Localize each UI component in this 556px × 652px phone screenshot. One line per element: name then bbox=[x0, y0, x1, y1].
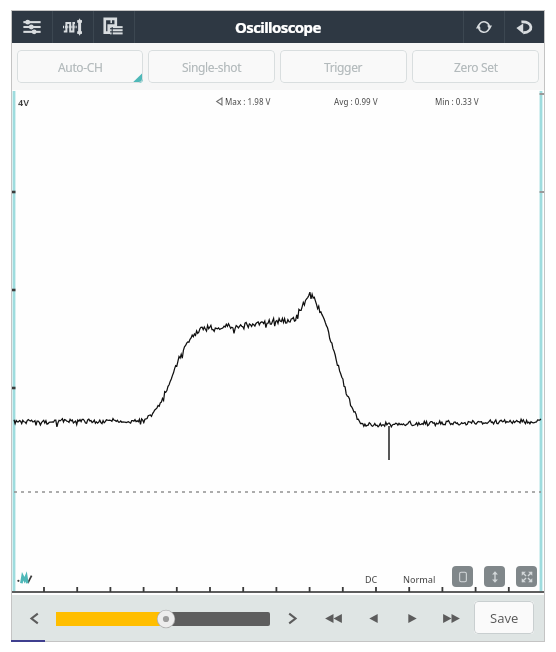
staticText: Trigger bbox=[324, 59, 363, 75]
button[interactable]: Save bbox=[474, 601, 534, 634]
button[interactable]: Rewind bbox=[319, 595, 347, 642]
staticText: Min : 0.33 V bbox=[435, 96, 479, 107]
button[interactable]: Settings bbox=[11, 10, 52, 43]
button[interactable]: Refresh bbox=[463, 10, 504, 43]
button[interactable]: Zero Set bbox=[412, 50, 539, 83]
staticText: 4V bbox=[18, 96, 29, 108]
staticText: Save bbox=[490, 609, 519, 627]
staticText: Single-shot bbox=[182, 59, 242, 75]
staticText: Max : 1.98 V bbox=[225, 96, 271, 107]
button[interactable]: Vertical scale bbox=[484, 566, 505, 587]
button[interactable]: Step forward bbox=[398, 595, 426, 642]
button[interactable]: Trigger bbox=[280, 50, 407, 83]
staticText: DC bbox=[365, 573, 403, 585]
button[interactable]: Single-shot bbox=[148, 50, 275, 83]
staticText: Normal bbox=[403, 573, 436, 585]
staticText: Avg : 0.99 V bbox=[334, 96, 378, 107]
button[interactable]: Hold bbox=[452, 566, 473, 587]
button[interactable]: Waveform bbox=[52, 10, 93, 43]
button[interactable]: Auto-CH bbox=[17, 50, 143, 83]
staticText: Zero Set bbox=[454, 59, 498, 75]
button[interactable] bbox=[56, 595, 270, 642]
staticText: Oscilloscope bbox=[235, 17, 321, 37]
button[interactable]: Save list bbox=[93, 10, 134, 43]
button[interactable]: Previous bbox=[20, 595, 48, 642]
button[interactable]: Step back bbox=[359, 595, 387, 642]
staticText: Auto-CH bbox=[58, 59, 103, 75]
button[interactable]: Fullscreen bbox=[516, 566, 537, 587]
button[interactable]: Next bbox=[278, 595, 306, 642]
button[interactable]: Back bbox=[504, 10, 545, 43]
button[interactable]: Fast forward bbox=[437, 595, 465, 642]
